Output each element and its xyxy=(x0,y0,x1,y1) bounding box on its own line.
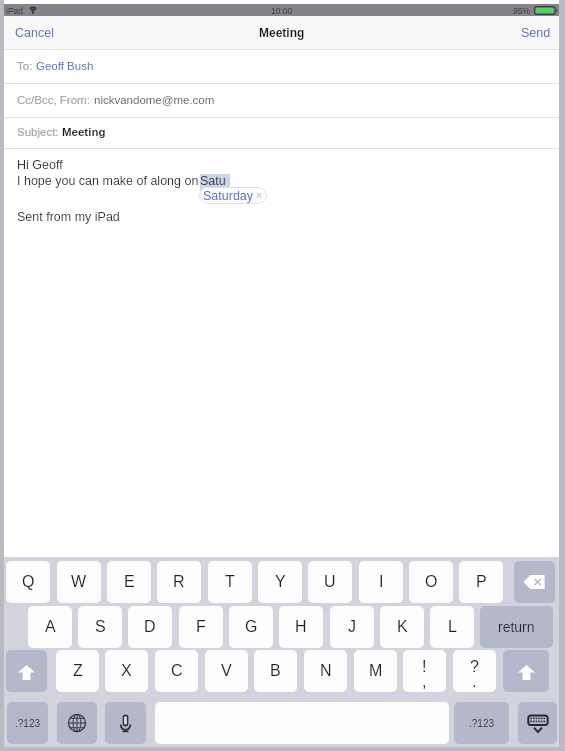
staticText: A xyxy=(45,618,56,636)
staticText: C xyxy=(171,662,183,680)
button[interactable]: J xyxy=(330,606,374,648)
button[interactable]: X xyxy=(105,650,148,692)
button[interactable]: .?123 xyxy=(7,702,48,744)
button[interactable]: Shift xyxy=(503,650,549,692)
staticText: N xyxy=(320,662,332,680)
staticText: Z xyxy=(73,662,83,680)
staticText: E xyxy=(124,573,135,591)
staticText: I hope you can make of along on xyxy=(17,174,199,188)
button[interactable]: B xyxy=(254,650,297,692)
staticText: Meeting xyxy=(259,26,305,39)
staticText: H xyxy=(295,618,307,636)
staticText: Geoff Bush xyxy=(36,60,94,73)
button[interactable]: Y xyxy=(258,561,302,603)
staticText: Saturday xyxy=(203,189,254,203)
button[interactable]: F xyxy=(179,606,223,648)
staticText: 95% xyxy=(513,6,531,15)
button[interactable]: H xyxy=(279,606,323,648)
button[interactable]: T xyxy=(208,561,252,603)
button[interactable]: E xyxy=(107,561,151,603)
staticText: .?123 xyxy=(15,718,41,729)
button[interactable]: P xyxy=(459,561,503,603)
button[interactable]: Z xyxy=(56,650,99,692)
button[interactable]: V xyxy=(205,650,248,692)
button[interactable]: Change keyboard xyxy=(57,702,97,744)
button[interactable]: S xyxy=(78,606,122,648)
button[interactable]: ! xyxy=(403,650,446,692)
staticText: G xyxy=(245,618,258,636)
button[interactable]: Shift xyxy=(6,650,47,692)
button[interactable]: Cancel xyxy=(4,16,65,49)
staticText: return xyxy=(498,619,535,635)
staticText: J xyxy=(348,618,356,636)
button[interactable]: Backspace xyxy=(514,561,555,603)
button[interactable]: To: xyxy=(4,50,559,83)
button[interactable]: W xyxy=(57,561,101,603)
button[interactable]: D xyxy=(128,606,172,648)
staticText: T xyxy=(225,573,235,591)
staticText: R xyxy=(173,573,185,591)
staticText: Hi Geoff xyxy=(17,158,63,172)
staticText: Cc/Bcc, From: xyxy=(17,94,94,107)
staticText: ? xyxy=(470,658,479,676)
button[interactable]: L xyxy=(430,606,474,648)
staticText: Send xyxy=(521,26,551,40)
button[interactable]: Send xyxy=(513,16,559,49)
button[interactable]: G xyxy=(229,606,273,648)
button[interactable]: O xyxy=(409,561,453,603)
staticText: Q xyxy=(22,573,35,591)
button[interactable]: R xyxy=(157,561,201,603)
button[interactable]: Q xyxy=(6,561,50,603)
staticText: Cancel xyxy=(15,26,54,40)
staticText: , xyxy=(422,673,427,691)
staticText: V xyxy=(221,662,232,680)
staticText: W xyxy=(71,573,87,591)
staticText: Y xyxy=(275,573,286,591)
staticText: Meeting xyxy=(62,126,106,139)
staticText: Subject: xyxy=(17,126,62,139)
button[interactable]: Hide keyboard xyxy=(518,702,557,744)
button[interactable]: A xyxy=(28,606,72,648)
staticText: P xyxy=(476,573,487,591)
staticText: U xyxy=(324,573,336,591)
button[interactable]: M xyxy=(354,650,397,692)
staticText: F xyxy=(196,618,206,636)
button[interactable]: N xyxy=(304,650,347,692)
button[interactable]: U xyxy=(308,561,352,603)
staticText: M xyxy=(369,662,383,680)
staticText: K xyxy=(397,618,408,636)
staticText: S xyxy=(95,618,106,636)
staticText: X xyxy=(121,662,132,680)
staticText: L xyxy=(448,618,457,636)
button[interactable]: C xyxy=(155,650,198,692)
staticText: O xyxy=(425,573,438,591)
staticText: .?123 xyxy=(469,718,495,729)
staticText: . xyxy=(472,673,477,691)
button[interactable]: .?123 xyxy=(454,702,509,744)
staticText: ! xyxy=(422,658,427,676)
staticText: iPad xyxy=(6,6,24,15)
staticText: I xyxy=(379,573,384,591)
staticText: Sent from my iPad xyxy=(17,210,120,224)
staticText: Satu xyxy=(200,174,226,188)
button[interactable]: K xyxy=(380,606,424,648)
button[interactable]: Dictate xyxy=(105,702,146,744)
button[interactable]: I xyxy=(359,561,403,603)
button[interactable]: return xyxy=(480,606,553,648)
staticText: To: xyxy=(17,60,36,73)
staticText: B xyxy=(270,662,281,680)
button[interactable]: Cc/Bcc, From: xyxy=(4,83,559,117)
staticText: 10:00 xyxy=(271,6,293,15)
staticText: D xyxy=(144,618,156,636)
button[interactable]: Subject: xyxy=(4,117,559,148)
staticText: × xyxy=(256,190,262,201)
button[interactable]: ? xyxy=(453,650,496,692)
staticText: nickvandome@me.com xyxy=(94,94,215,107)
button[interactable]: Saturday xyxy=(199,187,267,204)
